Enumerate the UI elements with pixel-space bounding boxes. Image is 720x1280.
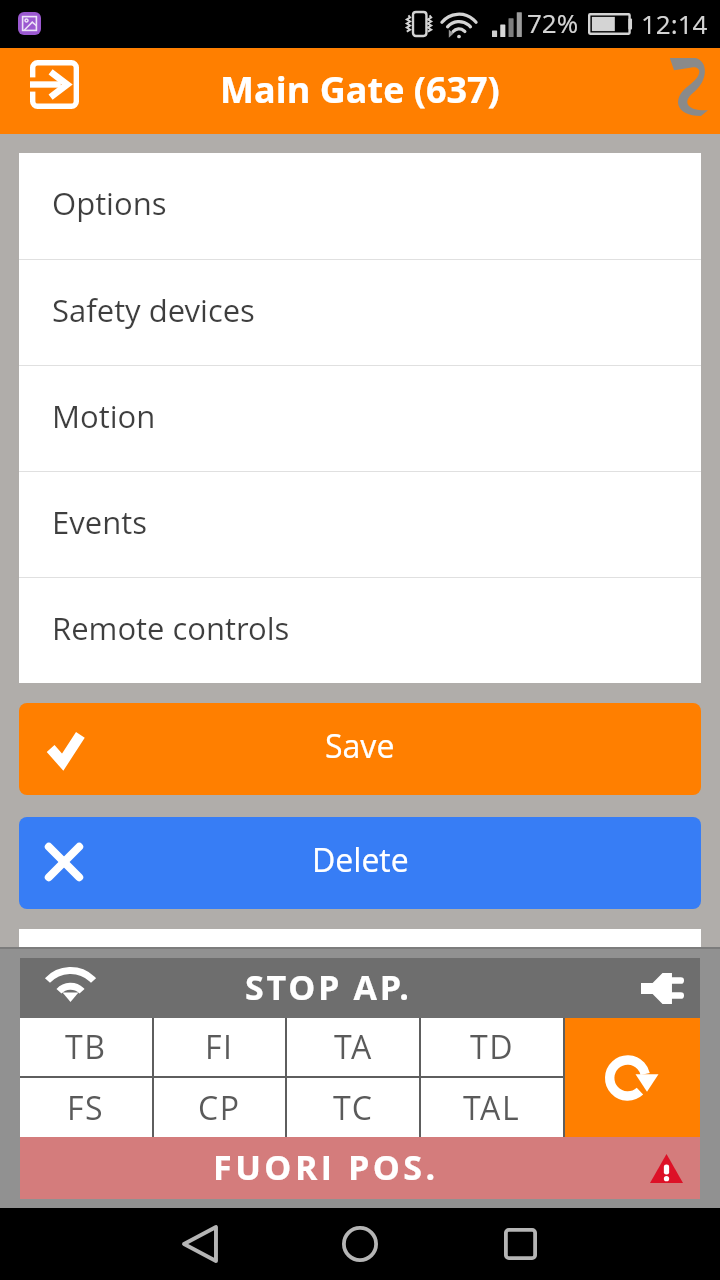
button[interactable]: Events bbox=[19, 472, 701, 577]
button[interactable]: Warning bbox=[632, 1137, 700, 1199]
button[interactable]: Refresh bbox=[565, 1018, 700, 1137]
staticText: Events bbox=[52, 501, 147, 543]
staticText: Remote controls bbox=[52, 607, 290, 649]
staticText: Safety devices bbox=[52, 289, 255, 331]
button[interactable]: FS bbox=[20, 1078, 152, 1137]
staticText: Save bbox=[325, 724, 395, 768]
staticText: FS bbox=[67, 1086, 105, 1130]
button[interactable]: Recents bbox=[484, 1208, 556, 1280]
button[interactable]: Safety devices bbox=[19, 260, 701, 365]
staticText: Delete bbox=[312, 838, 409, 882]
button[interactable]: FI bbox=[154, 1018, 285, 1076]
staticText: TC bbox=[333, 1086, 374, 1130]
button[interactable]: Save bbox=[19, 703, 701, 795]
staticText: Motion bbox=[52, 395, 156, 437]
button[interactable]: TA bbox=[287, 1018, 419, 1076]
button[interactable]: TB bbox=[20, 1018, 152, 1076]
button[interactable]: Delete bbox=[19, 817, 701, 909]
staticText: TD bbox=[470, 1025, 515, 1069]
button[interactable]: TD bbox=[421, 1018, 563, 1076]
staticText: TA bbox=[334, 1025, 373, 1069]
button[interactable]: Back bbox=[164, 1208, 236, 1280]
staticText: TB bbox=[65, 1025, 107, 1069]
staticText: Main Gate (637) bbox=[220, 65, 500, 114]
button[interactable]: Home bbox=[324, 1208, 396, 1280]
button[interactable]: TAL bbox=[421, 1078, 563, 1137]
button[interactable]: CP bbox=[154, 1078, 285, 1137]
staticText: FI bbox=[205, 1025, 234, 1069]
staticText: Options bbox=[52, 182, 167, 224]
staticText: 72% bbox=[527, 5, 579, 40]
staticText: 12:14 bbox=[641, 6, 708, 41]
button[interactable]: Power bbox=[624, 958, 700, 1018]
button[interactable]: Wi-Fi bbox=[20, 958, 96, 1018]
button[interactable]: Options bbox=[19, 153, 701, 259]
staticText: TAL bbox=[463, 1086, 521, 1130]
staticText: FUORI POS. bbox=[213, 1144, 439, 1190]
button[interactable]: Remote controls bbox=[19, 578, 701, 683]
button[interactable]: Exit bbox=[19, 49, 89, 119]
staticText: CP bbox=[198, 1086, 241, 1130]
button[interactable]: TC bbox=[287, 1078, 419, 1137]
button[interactable]: Motion bbox=[19, 366, 701, 471]
other: Logo bbox=[669, 58, 708, 116]
staticText: STOP AP. bbox=[245, 964, 412, 1010]
